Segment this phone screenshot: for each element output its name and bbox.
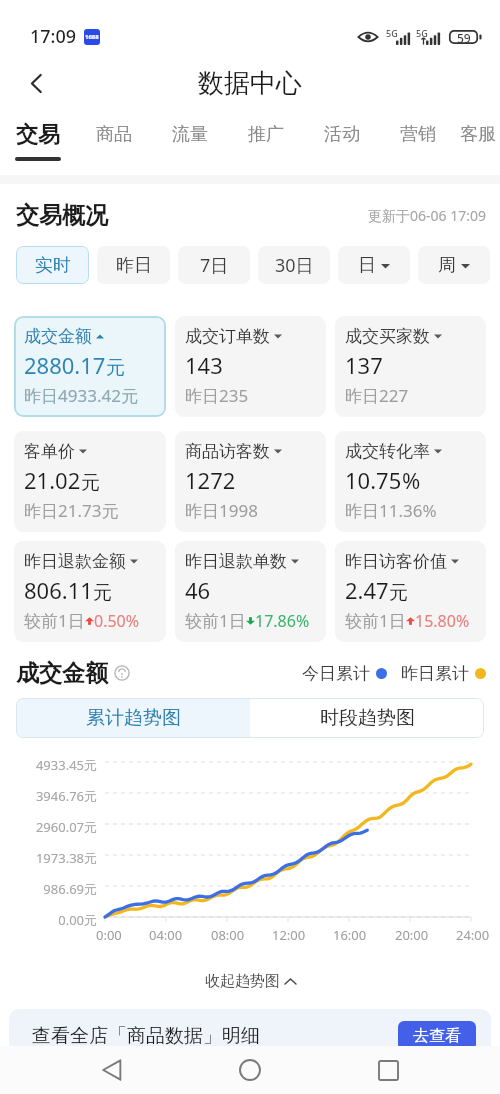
staticText: 数据中心 [198, 67, 302, 100]
staticText: 昨日 [116, 254, 152, 277]
staticText: 流量 [172, 123, 208, 146]
staticText: 30日 [275, 253, 314, 278]
staticText: 04:00 [149, 926, 183, 944]
staticText: 日 [358, 254, 376, 277]
staticText: 2.47 [345, 575, 389, 605]
staticText: 17:09 [30, 24, 77, 49]
staticText: 今日累计 [302, 663, 370, 684]
staticText: 15.80% [415, 610, 470, 632]
button[interactable]: 时段趋势图 [250, 698, 484, 738]
button[interactable]: 昨日退款金额 [14, 541, 166, 642]
button[interactable]: 昨日 [97, 246, 170, 284]
staticText: 交易概况 [16, 201, 108, 230]
staticText: 5G [386, 27, 398, 39]
button[interactable]: Home [224, 1046, 276, 1094]
staticText: 5G [416, 27, 428, 39]
staticText: 昨日11.36% [345, 499, 437, 522]
button[interactable]: 推广 [228, 110, 304, 175]
staticText: 1973.38元 [0, 849, 97, 867]
staticText: 昨日1998 [185, 499, 258, 522]
staticText: 21.02 [24, 465, 81, 495]
staticText: 137 [345, 350, 383, 380]
staticText: 元 [81, 471, 100, 495]
button[interactable]: 日 [338, 246, 410, 284]
staticText: 成交金额 [16, 659, 108, 688]
button[interactable]: 活动 [304, 110, 380, 175]
staticText: 0.00元 [0, 911, 97, 929]
button[interactable]: 客服 [456, 110, 500, 175]
staticText: 昨日退款金额 [24, 551, 126, 572]
button[interactable]: 成交买家数 [335, 316, 486, 417]
button[interactable]: 累计趋势图 [16, 698, 250, 738]
staticText: 143 [185, 350, 223, 380]
staticText: 昨日235 [185, 384, 249, 407]
staticText: 较前1日 [24, 609, 85, 632]
button[interactable]: Recents [362, 1046, 414, 1094]
staticText: 24:00 [456, 926, 490, 944]
staticText: 昨日4933.42元 [24, 384, 138, 407]
staticText: 46 [185, 575, 211, 605]
staticText: 59 [457, 30, 471, 44]
button[interactable]: 成交订单数 [175, 316, 326, 417]
button[interactable]: 成交转化率 [335, 431, 486, 532]
button[interactable]: 交易 [0, 110, 76, 175]
staticText: 17.86% [255, 610, 310, 632]
button[interactable]: 商品访客数 [175, 431, 326, 532]
staticText: 元 [389, 581, 408, 605]
staticText: 去查看 [413, 1026, 461, 1046]
staticText: 昨日累计 [401, 663, 469, 684]
staticText: 20:00 [395, 926, 429, 944]
button[interactable]: 周 [418, 246, 490, 284]
button[interactable]: 去查看 [398, 1021, 476, 1046]
staticText: 3946.76元 [0, 787, 97, 805]
staticText: 实时 [35, 254, 71, 277]
button[interactable]: 商品 [76, 110, 152, 175]
button[interactable]: 营销 [380, 110, 456, 175]
button[interactable]: 30日 [258, 246, 330, 284]
staticText: 08:00 [211, 926, 245, 944]
staticText: 0:00 [96, 926, 122, 944]
button[interactable]: 7日 [178, 246, 250, 284]
staticText: 成交订单数 [185, 326, 270, 347]
staticText: 0.50% [94, 610, 140, 632]
button[interactable]: 成交金额 [14, 316, 166, 417]
staticText: 查看全店「商品数据」明细 [32, 1024, 260, 1046]
button[interactable]: 昨日退款单数 [175, 541, 326, 642]
staticText: 更新于06-06 17:09 [368, 206, 486, 225]
staticText: 营销 [400, 123, 436, 146]
staticText: 时段趋势图 [320, 706, 415, 730]
staticText: 2960.07元 [0, 818, 97, 836]
button[interactable]: 昨日访客价值 [335, 541, 486, 642]
staticText: 16:00 [333, 926, 367, 944]
button[interactable]: 流量 [152, 110, 228, 175]
button[interactable]: 查看全店「商品数据」明细 [9, 1009, 491, 1046]
staticText: 昨日21.73元 [24, 499, 119, 522]
staticText: 986.69元 [0, 880, 97, 898]
button[interactable]: 收起趋势图 [0, 961, 500, 1001]
staticText: 昨日访客价值 [345, 551, 447, 572]
button[interactable]: 客单价 [14, 431, 166, 532]
staticText: 1688 [85, 33, 99, 41]
staticText: 10.75 [345, 465, 402, 495]
staticText: 累计趋势图 [86, 706, 181, 730]
staticText: 交易 [16, 121, 60, 149]
staticText: 客服 [460, 123, 496, 146]
staticText: 昨日退款单数 [185, 551, 287, 572]
staticText: 商品访客数 [185, 441, 270, 462]
staticText: 客单价 [24, 441, 75, 462]
staticText: 商品 [96, 123, 132, 146]
staticText: % [402, 465, 421, 495]
staticText: 推广 [248, 123, 284, 146]
staticText: 元 [93, 581, 112, 605]
staticText: 成交转化率 [345, 441, 430, 462]
staticText: 成交金额 [24, 326, 92, 347]
staticText: 元 [106, 356, 125, 380]
staticText: 周 [438, 254, 456, 277]
staticText: 成交买家数 [345, 326, 430, 347]
staticText: 806.11 [24, 575, 93, 605]
staticText: 收起趋势图 [205, 972, 280, 991]
button[interactable]: Back [18, 65, 54, 101]
button[interactable]: 实时 [16, 246, 89, 284]
staticText: 1272 [185, 465, 236, 495]
button[interactable]: Back [86, 1046, 138, 1094]
